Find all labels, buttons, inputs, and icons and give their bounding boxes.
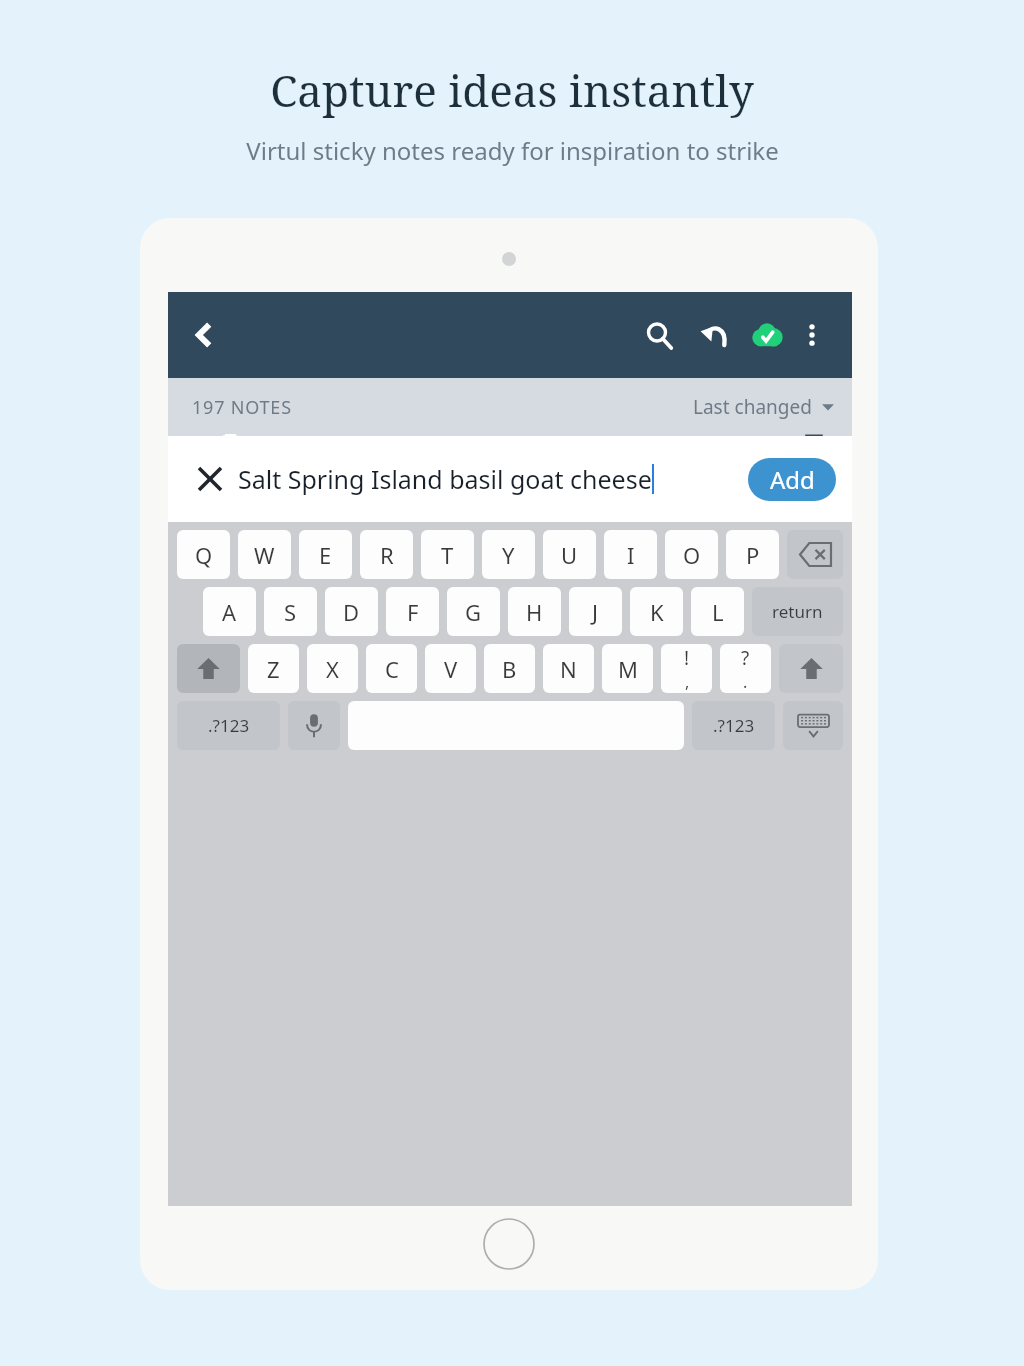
button[interactable]: Key <box>177 644 240 693</box>
button[interactable]: Search <box>636 312 682 358</box>
button[interactable]: J <box>569 587 622 636</box>
button[interactable]: A <box>203 587 256 636</box>
staticText: S <box>284 597 297 627</box>
button[interactable]: Undo <box>690 312 736 358</box>
staticText: K <box>650 597 664 627</box>
button[interactable]: R <box>360 530 413 579</box>
button[interactable]: U <box>543 530 596 579</box>
button[interactable]: S <box>264 587 317 636</box>
staticText: C <box>385 654 399 684</box>
button[interactable]: W <box>238 530 291 579</box>
button[interactable]: Key <box>779 644 843 693</box>
staticText: Salt Spring Island basil goat cheese <box>238 462 652 496</box>
button[interactable]: Last changed <box>675 386 852 428</box>
button[interactable]: .?123 <box>692 701 775 750</box>
staticText: ! <box>684 645 690 671</box>
staticText: U <box>561 540 578 570</box>
staticText: . <box>743 671 748 693</box>
staticText: I <box>627 540 635 570</box>
staticText: Capture ideas instantly <box>270 60 754 120</box>
button[interactable]: F <box>386 587 439 636</box>
staticText: L <box>712 597 724 627</box>
staticText: R <box>380 540 394 570</box>
button[interactable]: Key <box>288 701 340 750</box>
button[interactable]: Z <box>248 644 299 693</box>
staticText: , <box>685 671 690 693</box>
button[interactable]: L <box>691 587 744 636</box>
staticText: G <box>465 597 482 627</box>
staticText: Add <box>770 463 815 496</box>
staticText: .?123 <box>208 714 250 737</box>
staticText: Virtul sticky notes ready for inspiratio… <box>246 134 779 167</box>
staticText: Y <box>502 540 515 570</box>
staticText: P <box>746 540 760 570</box>
staticText: H <box>526 597 543 627</box>
staticText: T <box>441 540 454 570</box>
staticText: A <box>222 597 237 627</box>
button[interactable]: Add <box>748 458 836 501</box>
staticText: Z <box>267 654 280 684</box>
staticText: D <box>343 597 360 627</box>
button[interactable]: G <box>447 587 500 636</box>
staticText: X <box>326 654 339 684</box>
button[interactable]: H <box>508 587 561 636</box>
staticText: J <box>592 597 599 627</box>
staticText: W <box>254 540 275 570</box>
staticText: .?123 <box>713 714 755 737</box>
button[interactable]: Key <box>661 644 712 693</box>
button[interactable]: E <box>299 530 352 579</box>
button[interactable]: C <box>366 644 417 693</box>
staticText: F <box>407 597 419 627</box>
button[interactable]: I <box>604 530 657 579</box>
button[interactable]: Key <box>787 530 843 579</box>
button[interactable]: B <box>484 644 535 693</box>
button[interactable]: K <box>630 587 683 636</box>
button[interactable]: N <box>543 644 594 693</box>
staticText: 197 NOTES <box>192 395 292 420</box>
button[interactable]: Synced <box>744 312 790 358</box>
staticText: V <box>444 654 458 684</box>
staticText: E <box>319 540 332 570</box>
staticText: B <box>502 654 517 684</box>
button[interactable]: More options <box>792 315 832 355</box>
staticText: M <box>618 654 638 684</box>
button[interactable]: Y <box>482 530 535 579</box>
button[interactable]: D <box>325 587 378 636</box>
button[interactable]: Key <box>720 644 771 693</box>
button[interactable]: Clear <box>192 461 228 497</box>
staticText: Q <box>195 540 213 570</box>
button[interactable]: return <box>752 587 843 636</box>
button[interactable]: .?123 <box>177 701 280 750</box>
button[interactable]: Back <box>180 311 228 359</box>
button[interactable]: Key <box>783 701 843 750</box>
button[interactable]: P <box>726 530 779 579</box>
button[interactable]: X <box>307 644 358 693</box>
staticText: N <box>560 654 577 684</box>
staticText: ? <box>741 645 750 671</box>
staticText: return <box>772 600 823 623</box>
button[interactable]: O <box>665 530 718 579</box>
button[interactable]: Q <box>177 530 230 579</box>
button[interactable]: T <box>421 530 474 579</box>
staticText: O <box>683 540 701 570</box>
button[interactable]: M <box>602 644 653 693</box>
staticText: Last changed <box>693 394 812 420</box>
button[interactable]: V <box>425 644 476 693</box>
